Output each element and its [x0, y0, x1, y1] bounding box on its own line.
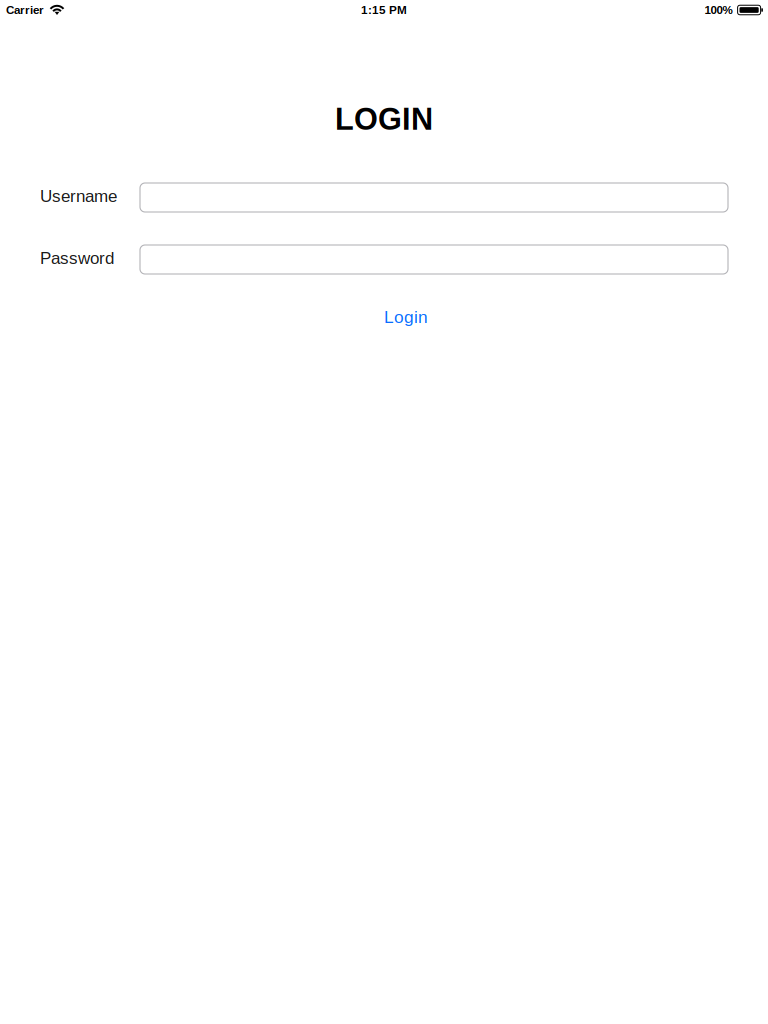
- button[interactable]: Login: [384, 306, 428, 328]
- staticText: Carrier: [6, 3, 44, 16]
- staticText: Username: [40, 186, 117, 205]
- staticText: 100%: [705, 3, 733, 16]
- staticText: 1:15 PM: [361, 3, 407, 16]
- staticText: LOGIN: [335, 102, 433, 136]
- staticText: Password: [40, 248, 114, 267]
- button[interactable]: Username: [140, 183, 728, 212]
- staticText: Login: [384, 307, 428, 327]
- button[interactable]: Password: [140, 245, 728, 274]
